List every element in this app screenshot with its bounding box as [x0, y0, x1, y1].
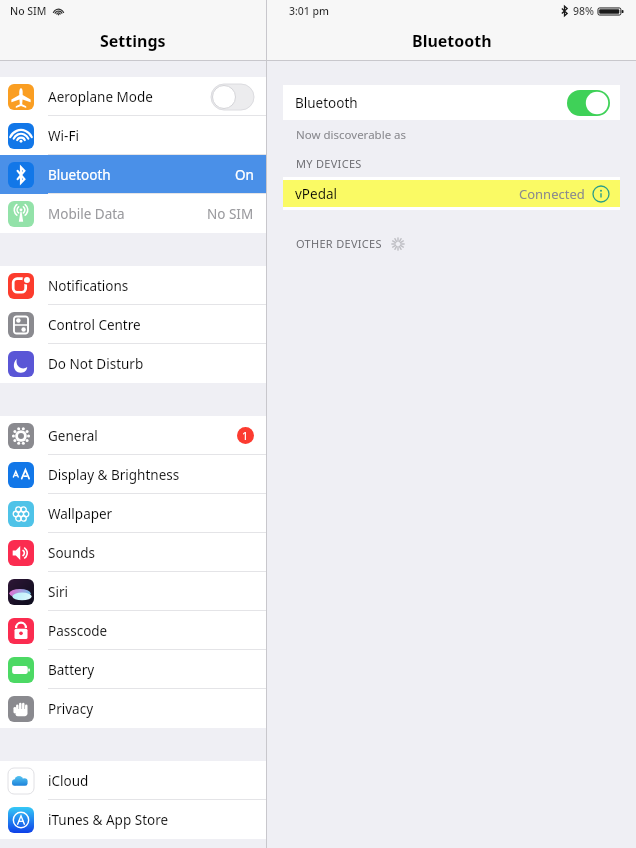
staticText: No SIM [207, 205, 254, 223]
staticText: Control Centre [48, 316, 254, 334]
staticText: Do Not Disturb [48, 355, 254, 373]
staticText: Aeroplane Mode [48, 88, 211, 106]
staticText: 98% [573, 4, 594, 18]
staticText: Bluetooth [412, 30, 492, 52]
staticText: 1 [242, 428, 249, 443]
button[interactable]: Bluetooth [0, 155, 266, 194]
button[interactable]: Control Centre [0, 305, 266, 344]
staticText: Passcode [48, 622, 254, 640]
staticText: vPedal [295, 185, 519, 203]
staticText: iCloud [48, 772, 254, 790]
button[interactable]: Battery [0, 650, 266, 689]
button[interactable]: Privacy [0, 689, 266, 728]
staticText: General [48, 427, 237, 445]
button[interactable]: vPedal [283, 177, 620, 210]
staticText: Sounds [48, 544, 254, 562]
button[interactable]: Wi-Fi [0, 116, 266, 155]
staticText: Connected [519, 185, 585, 203]
staticText: Siri [48, 583, 254, 601]
staticText: MY DEVICES [296, 156, 362, 171]
button[interactable]: Display & Brightness [0, 455, 266, 494]
staticText: Battery [48, 661, 254, 679]
staticText: 3:01 pm [289, 4, 330, 18]
staticText: Notifications [48, 277, 254, 295]
button[interactable]: Notifications [0, 266, 266, 305]
button[interactable]: iCloud [0, 761, 266, 800]
staticText: Bluetooth [295, 94, 567, 112]
button[interactable]: Siri [0, 572, 266, 611]
staticText: Mobile Data [48, 205, 207, 223]
staticText: Settings [100, 30, 166, 52]
staticText: On [235, 166, 254, 184]
staticText: Bluetooth [48, 166, 235, 184]
staticText: No SIM [10, 4, 47, 18]
button[interactable]: Passcode [0, 611, 266, 650]
staticText: Wallpaper [48, 505, 254, 523]
button[interactable]: Do Not Disturb [0, 344, 266, 383]
staticText: OTHER DEVICES [296, 236, 382, 251]
button[interactable]: More info about vPedal [592, 185, 610, 203]
button[interactable]: Aeroplane Mode [0, 77, 266, 116]
staticText: Wi-Fi [48, 127, 254, 145]
button[interactable]: Sounds [0, 533, 266, 572]
button[interactable]: iTunes & App Store [0, 800, 266, 839]
staticText: iTunes & App Store [48, 811, 254, 829]
staticText: Now discoverable as [296, 127, 407, 143]
button[interactable]: Wallpaper [0, 494, 266, 533]
button[interactable]: Mobile Data [0, 194, 266, 233]
button[interactable]: General [0, 416, 266, 455]
staticText: Privacy [48, 700, 254, 718]
staticText: Display & Brightness [48, 466, 254, 484]
button[interactable]: Bluetooth [283, 85, 620, 120]
